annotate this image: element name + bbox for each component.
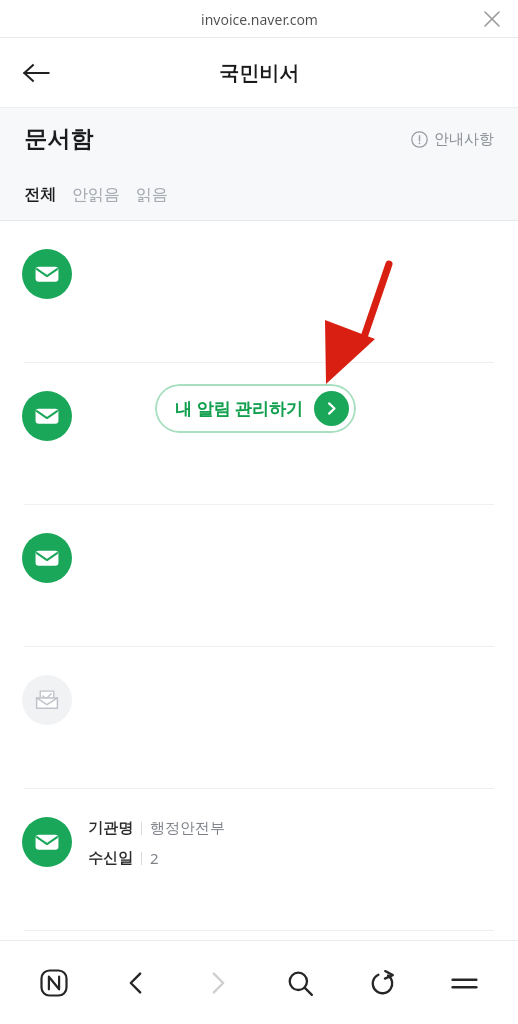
- button[interactable]: [0, 221, 518, 363]
- button[interactable]: 전체: [24, 179, 56, 211]
- button[interactable]: Menu: [436, 955, 492, 1011]
- staticText: 안내사항: [434, 130, 494, 149]
- staticText: 안읽음: [72, 185, 120, 205]
- button[interactable]: 내 알림 관리하기: [155, 384, 356, 433]
- staticText: 내 알림 관리하기: [175, 397, 303, 420]
- staticText: 수신일: [88, 849, 133, 868]
- staticText: invoice.naver.com: [201, 10, 318, 29]
- button[interactable]: 읽음: [136, 179, 168, 211]
- staticText: 기관명: [88, 819, 133, 838]
- staticText: 행정안전부: [150, 819, 225, 838]
- button[interactable]: 안내사항: [407, 126, 498, 153]
- button[interactable]: [0, 363, 518, 505]
- staticText: 읽음: [136, 185, 168, 205]
- button[interactable]: [0, 647, 518, 789]
- button[interactable]: [0, 505, 518, 647]
- button[interactable]: 안읽음: [72, 179, 120, 211]
- button[interactable]: Back: [10, 47, 62, 99]
- staticText: 2: [150, 848, 159, 868]
- button[interactable]: 기관명: [0, 789, 518, 931]
- button[interactable]: Back: [108, 955, 164, 1011]
- button[interactable]: Naver home: [26, 955, 82, 1011]
- button[interactable]: Refresh: [354, 955, 410, 1011]
- staticText: 국민비서: [219, 61, 299, 86]
- button[interactable]: Forward: [190, 955, 246, 1011]
- staticText: 문서함: [24, 125, 93, 154]
- button[interactable]: Search: [272, 955, 328, 1011]
- staticText: 전체: [24, 185, 56, 205]
- button[interactable]: Close: [474, 1, 510, 37]
